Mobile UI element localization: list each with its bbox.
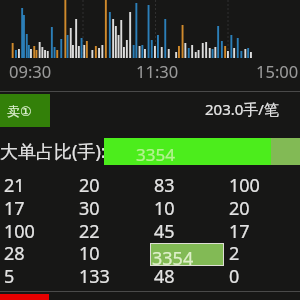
staticText: 2 xyxy=(229,241,240,266)
button[interactable]: 3354 xyxy=(150,243,224,266)
staticText: 30 xyxy=(79,196,100,221)
staticText: 22 xyxy=(79,219,100,244)
staticText: 83 xyxy=(154,173,175,198)
staticText: 3354 xyxy=(152,246,194,269)
staticText: 17 xyxy=(4,196,25,221)
staticText: 0 xyxy=(229,264,240,289)
staticText: 20 xyxy=(229,196,250,221)
staticText: 11:30 xyxy=(136,60,179,80)
staticText: 大单占比(手): xyxy=(0,139,106,164)
staticText: 17 xyxy=(229,219,250,244)
staticText: 203.0手/笔 xyxy=(205,99,279,119)
staticText: 21 xyxy=(4,173,25,198)
staticText: 28 xyxy=(4,241,25,266)
staticText: 100 xyxy=(229,173,260,198)
staticText: 10 xyxy=(79,241,100,266)
staticText: 45 xyxy=(154,219,175,244)
staticText: 卖① xyxy=(7,103,32,119)
staticText: 15:00 xyxy=(256,60,299,80)
staticText: 5 xyxy=(4,264,15,289)
staticText: 10 xyxy=(154,196,175,221)
staticText: 100 xyxy=(4,219,35,244)
button[interactable]: 卖① xyxy=(0,94,50,127)
staticText: 3354 xyxy=(136,143,175,166)
staticText: 09:30 xyxy=(9,60,52,80)
staticText: 48 xyxy=(154,264,175,289)
staticText: 133 xyxy=(79,264,110,289)
staticText: 20 xyxy=(79,173,100,198)
